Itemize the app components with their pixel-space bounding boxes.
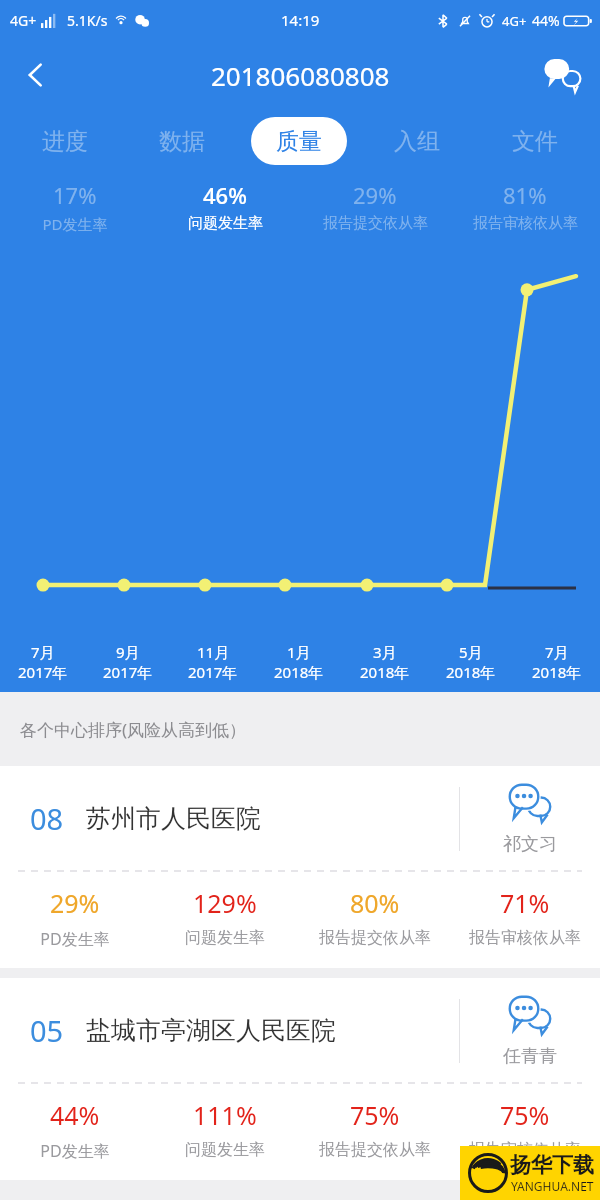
staticText: 进度 [42,127,88,156]
staticText: 111% [193,1098,257,1132]
staticText: 2018年 [446,662,496,682]
button[interactable]: Back [8,47,64,103]
staticText: 201806080808 [211,58,390,93]
staticText: YANGHUA.NET [511,1178,594,1194]
button[interactable]: 29% [300,180,450,233]
staticText: 14:19 [281,10,320,30]
staticText: 各个中心排序(风险从高到低） [20,718,247,741]
button[interactable]: 数据 [123,110,240,172]
staticText: 入组 [394,127,440,156]
staticText: 报告审核依从率 [469,928,581,948]
staticText: 46% [203,180,247,210]
staticText: 文件 [512,127,558,156]
staticText: 扬华下载 [510,1152,594,1178]
staticText: PD发生率 [42,214,108,234]
staticText: 2018年 [532,662,582,682]
button[interactable]: Messages [534,47,590,103]
staticText: 报告提交依从率 [323,214,428,233]
staticText: 44% [50,1098,100,1132]
staticText: PD发生率 [40,1140,110,1162]
staticText: 71% [500,886,550,920]
staticText: 问题发生率 [185,1140,265,1160]
staticText: 问题发生率 [185,928,265,948]
staticText: 2018年 [274,662,324,682]
button[interactable]: 46% [150,180,300,233]
staticText: 11月 [197,642,230,662]
staticText: 29% [353,180,397,210]
staticText: 2017年 [188,662,238,682]
staticText: 5月 [459,642,483,662]
staticText: 苏州市人民医院 [86,803,261,834]
button[interactable]: Chat with 祁文习 [460,781,600,856]
staticText: 05 [30,1011,64,1050]
staticText: 7月 [31,642,55,662]
other: Chat with 祁文习 [507,781,553,827]
staticText: 任青青 [503,1045,557,1068]
staticText: 9月 [116,642,140,662]
staticText: 80% [350,886,400,920]
staticText: 7月 [545,642,569,662]
staticText: 3月 [373,642,397,662]
staticText: 报告审核依从率 [473,214,578,233]
staticText: 29% [50,886,100,920]
button[interactable]: 05 [0,978,600,1180]
staticText: PD发生率 [40,928,110,950]
button[interactable]: 81% [450,180,600,233]
staticText: 2017年 [18,662,68,682]
staticText: 81% [503,180,547,210]
button[interactable]: 入组 [358,110,476,172]
staticText: 报告提交依从率 [319,1140,431,1160]
staticText: 质量 [276,127,322,156]
staticText: 问题发生率 [188,214,263,233]
staticText: 盐城市亭湖区人民医院 [86,1015,336,1046]
button[interactable]: 08 [0,766,600,968]
staticText: 08 [30,799,64,838]
button[interactable]: 进度 [6,110,123,172]
button[interactable]: 质量 [240,110,358,172]
other: Chat with 任青青 [507,993,553,1039]
button[interactable]: 17% [0,180,150,234]
staticText: 数据 [159,127,205,156]
staticText: 报告审核依从率 [469,1140,581,1160]
staticText: 报告提交依从率 [319,928,431,948]
staticText: 129% [193,886,257,920]
button[interactable]: Chat with 任青青 [460,993,600,1068]
staticText: 75% [350,1098,400,1132]
staticText: 75% [500,1098,550,1132]
staticText: 祁文习 [503,833,557,856]
staticText: 4G+ [10,11,37,30]
staticText: 5.1K/s [67,11,108,30]
staticText: 4G+ [502,12,527,30]
staticText: 1月 [287,642,311,662]
staticText: 17% [53,180,97,210]
staticText: 2018年 [360,662,410,682]
staticText: 44% [532,11,560,30]
staticText: 2017年 [103,662,153,682]
button[interactable]: 文件 [476,110,594,172]
